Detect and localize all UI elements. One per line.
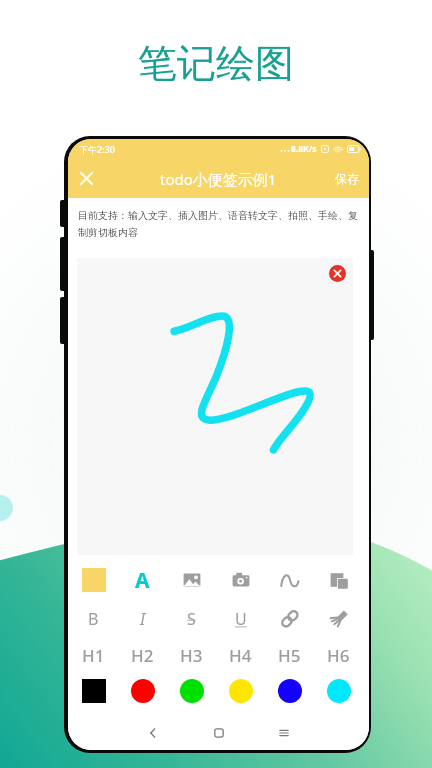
button[interactable]: Color bbox=[265, 673, 314, 709]
button[interactable]: Close bbox=[74, 166, 99, 191]
staticText: 笔记绘图 bbox=[138, 39, 294, 88]
staticText: 8.8K/s bbox=[291, 143, 317, 155]
staticText: A bbox=[135, 566, 150, 595]
button[interactable]: Clipboard bbox=[314, 559, 363, 601]
staticText: H4 bbox=[229, 644, 252, 667]
button[interactable]: Black bbox=[69, 673, 118, 709]
staticText: B bbox=[88, 608, 99, 630]
button[interactable]: S bbox=[167, 601, 216, 637]
staticText: H2 bbox=[131, 644, 154, 667]
button[interactable]: I bbox=[118, 601, 167, 637]
staticText: todo小便签示例1 bbox=[160, 169, 277, 189]
staticText: I bbox=[140, 608, 146, 630]
staticText: H6 bbox=[327, 644, 350, 667]
button[interactable]: Heading 3 bbox=[167, 637, 216, 673]
button[interactable]: Link bbox=[265, 601, 314, 637]
button[interactable]: 保存 bbox=[325, 165, 369, 192]
button[interactable]: Camera bbox=[216, 559, 265, 601]
button[interactable]: Color bbox=[314, 673, 363, 709]
staticText: 目前支持：输入文字、插入图片、语音转文字、拍照、手绘、复制剪切板内容 bbox=[78, 209, 360, 239]
staticText: 保存 bbox=[335, 171, 359, 186]
button[interactable]: Color bbox=[167, 673, 216, 709]
button[interactable]: Back bbox=[140, 720, 166, 746]
staticText: S bbox=[187, 608, 196, 630]
staticText: H5 bbox=[278, 644, 301, 667]
button[interactable]: Heading 6 bbox=[314, 637, 363, 673]
button[interactable]: Heading 1 bbox=[69, 637, 118, 673]
staticText: U bbox=[235, 608, 247, 630]
button[interactable]: Handwriting bbox=[265, 559, 314, 601]
button[interactable]: Color bbox=[118, 673, 167, 709]
button[interactable]: B bbox=[69, 601, 118, 637]
button[interactable]: Heading 4 bbox=[216, 637, 265, 673]
staticText: H1 bbox=[82, 644, 105, 667]
button[interactable]: Delete drawing bbox=[329, 265, 346, 282]
button[interactable]: Highlight bbox=[69, 559, 118, 601]
button[interactable]: Heading 5 bbox=[265, 637, 314, 673]
button[interactable]: U bbox=[216, 601, 265, 637]
button[interactable]: Recent apps bbox=[271, 720, 297, 746]
button[interactable]: Image bbox=[167, 559, 216, 601]
staticText: 下午2:30 bbox=[79, 143, 115, 155]
staticText: H3 bbox=[180, 644, 203, 667]
button[interactable]: Heading 2 bbox=[118, 637, 167, 673]
button[interactable]: Color bbox=[216, 673, 265, 709]
button[interactable]: Text style bbox=[118, 559, 167, 601]
button[interactable]: Home bbox=[206, 720, 232, 746]
button[interactable]: Clear formatting bbox=[314, 601, 363, 637]
